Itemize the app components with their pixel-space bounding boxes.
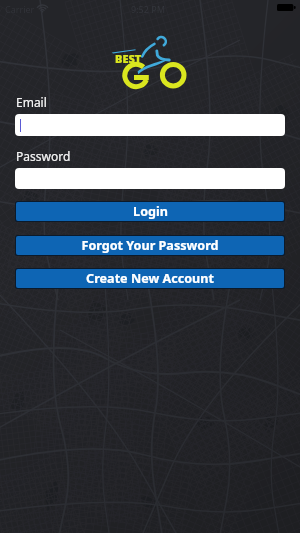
staticText: Carrier [5, 3, 35, 15]
button[interactable]: Create New Account [16, 269, 284, 288]
staticText: BEST [115, 51, 142, 66]
staticText: 9:52 PM [131, 3, 165, 15]
button[interactable]: Forgot Your Password [16, 236, 284, 255]
button[interactable]: Login [16, 202, 284, 221]
staticText: Login [133, 203, 168, 220]
button[interactable] [15, 114, 285, 136]
staticText: Create New Account [86, 270, 214, 287]
staticText: Forgot Your Password [81, 237, 219, 254]
staticText: Email [16, 94, 47, 110]
other: Wifi [38, 4, 47, 13]
button[interactable] [15, 168, 285, 189]
staticText: Password [16, 148, 71, 164]
